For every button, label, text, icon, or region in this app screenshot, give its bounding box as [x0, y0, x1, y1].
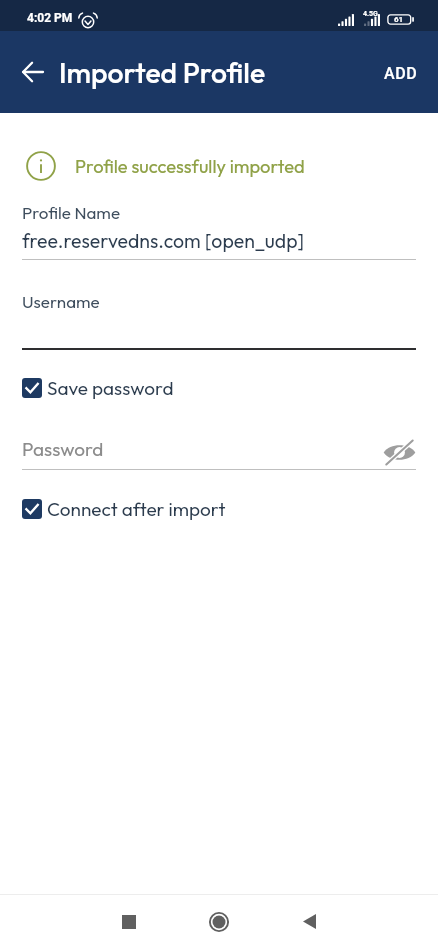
staticText: Password — [22, 437, 104, 461]
staticText: Save password — [47, 376, 174, 400]
button[interactable]: Connect after import — [0, 494, 438, 524]
staticText: Profile Name — [22, 202, 120, 223]
staticText: 4.5G — [363, 10, 378, 18]
staticText: Username — [22, 291, 100, 312]
button[interactable]: Navigate up — [13, 53, 51, 91]
button[interactable]: Back — [286, 895, 332, 948]
staticText: Connect after import — [47, 497, 226, 521]
staticText: Profile successfully imported — [75, 155, 305, 178]
button[interactable]: Show password — [379, 437, 420, 468]
staticText: ADD — [384, 64, 418, 83]
button[interactable]: Recent apps — [106, 895, 152, 948]
staticText: 61 — [394, 15, 404, 24]
button[interactable]: ADD — [361, 43, 438, 102]
staticText: Imported Profile — [59, 55, 266, 91]
staticText: 4:02 PM — [27, 11, 73, 25]
staticText: free.reservedns.com [open_udp] — [22, 228, 305, 253]
button[interactable]: Home — [196, 895, 242, 948]
button[interactable]: Save password — [0, 373, 438, 403]
